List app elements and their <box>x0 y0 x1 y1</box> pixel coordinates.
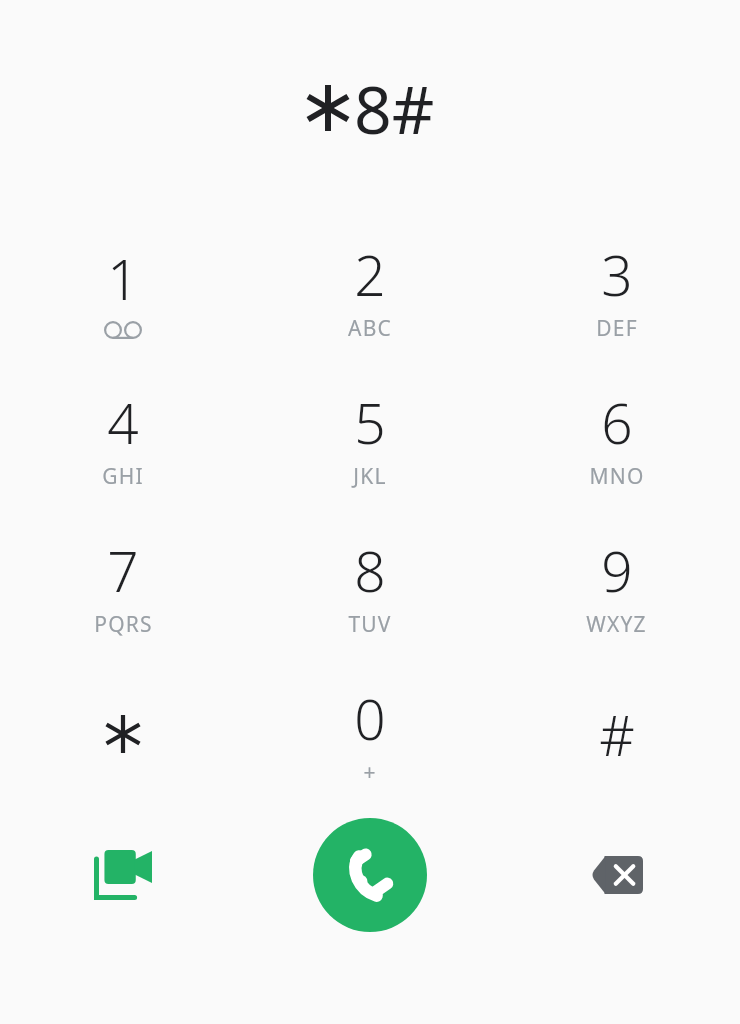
staticText: + <box>363 758 377 787</box>
button[interactable]: 7 <box>0 512 246 660</box>
button[interactable]: 4 <box>0 364 246 512</box>
staticText: 9 <box>601 533 633 608</box>
button[interactable]: 8 <box>246 512 493 660</box>
staticText: DEF <box>596 314 638 343</box>
staticText: ABC <box>348 314 392 343</box>
staticText: 5 <box>354 385 386 460</box>
staticText: 3 <box>601 237 633 312</box>
staticText: JKL <box>353 462 387 491</box>
button[interactable]: Backspace <box>569 827 665 923</box>
staticText: PQRS <box>94 610 153 639</box>
staticText: MNO <box>589 462 645 491</box>
staticText: 8# <box>354 63 435 153</box>
staticText: 4 <box>107 385 139 460</box>
staticText: 8 <box>354 533 386 608</box>
button[interactable]: Call <box>313 818 427 932</box>
button[interactable]: 6 <box>493 364 740 512</box>
staticText: 0 <box>354 681 386 756</box>
button[interactable]: 1 <box>0 216 246 364</box>
button[interactable]: 8# <box>305 63 435 153</box>
button[interactable]: Video call <box>75 827 171 923</box>
staticText: 7 <box>107 533 139 608</box>
button[interactable]: 0 <box>246 660 493 808</box>
button[interactable]: 9 <box>493 512 740 660</box>
staticText: 2 <box>354 237 386 312</box>
staticText: TUV <box>348 610 392 639</box>
staticText: GHI <box>102 462 144 491</box>
button[interactable]: # <box>493 660 740 808</box>
staticText: 6 <box>601 385 633 460</box>
staticText: 1 <box>107 241 139 316</box>
button[interactable]: 5 <box>246 364 493 512</box>
staticText: WXYZ <box>586 610 647 639</box>
button[interactable]: 2 <box>246 216 493 364</box>
staticText: # <box>599 697 635 772</box>
button[interactable]: 3 <box>493 216 740 364</box>
button[interactable] <box>0 660 246 808</box>
